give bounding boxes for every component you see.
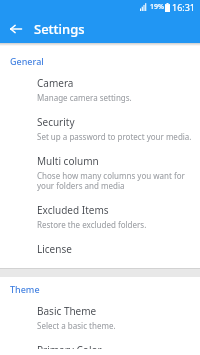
button[interactable]: Excluded Items — [0, 197, 200, 236]
button[interactable]: Multi column — [0, 148, 200, 197]
staticText: Settings — [34, 20, 85, 38]
staticText: Basic Theme — [37, 304, 97, 318]
staticText: Primary Color — [37, 343, 102, 349]
staticText: 19% — [150, 2, 164, 12]
staticText: 16:31 — [172, 1, 196, 13]
staticText: Manage camera settings. — [37, 92, 132, 103]
staticText: Multi column — [37, 154, 99, 168]
staticText: Chose how many columns you want for your… — [37, 170, 192, 191]
staticText: Set up a password to protect your media. — [37, 131, 192, 142]
staticText: Camera — [37, 76, 74, 90]
button[interactable]: Back — [5, 18, 27, 40]
button[interactable]: License — [0, 236, 200, 262]
staticText: Excluded Items — [37, 203, 109, 217]
button[interactable]: Primary Color — [0, 337, 200, 355]
staticText: General — [10, 55, 44, 67]
staticText: Select a basic theme. — [37, 320, 116, 331]
staticText: Theme — [10, 283, 40, 295]
button[interactable]: Basic Theme — [0, 298, 200, 337]
button[interactable]: Camera — [0, 70, 200, 109]
staticText: Security — [37, 115, 75, 129]
staticText: Restore the excluded folders. — [37, 219, 147, 230]
staticText: License — [37, 242, 72, 256]
button[interactable]: Security — [0, 109, 200, 148]
